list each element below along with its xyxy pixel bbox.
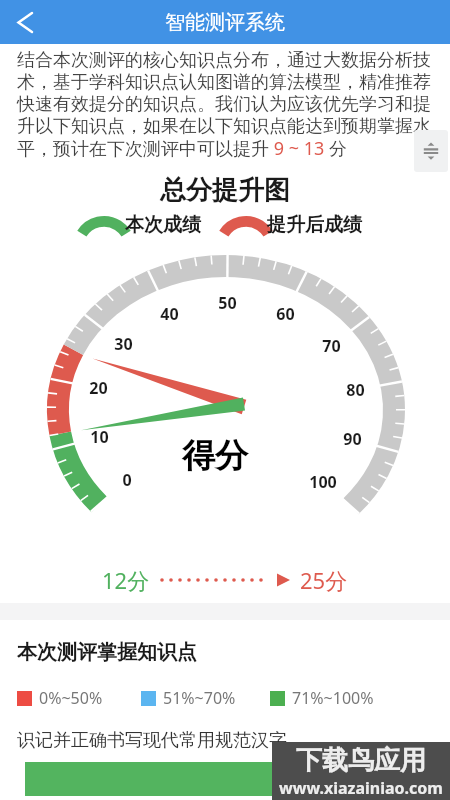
- staticText: 本次成绩: [125, 213, 201, 237]
- staticText: 得分: [182, 435, 248, 477]
- staticText: 51%~70%: [163, 687, 236, 709]
- staticText: 71%~100%: [292, 687, 374, 709]
- staticText: 12分: [102, 565, 150, 595]
- staticText: 结合本次测评的核心知识点分布，通过大数据分析技 术，基于学科知识点认知图谱的算法…: [17, 49, 445, 161]
- staticText: 40: [160, 303, 179, 325]
- staticText: 总分提升图: [160, 174, 290, 207]
- staticText: 0: [122, 469, 132, 491]
- button[interactable]: Menu: [414, 130, 448, 172]
- button[interactable]: 71%~100%: [270, 687, 374, 709]
- staticText: 25分: [300, 565, 348, 595]
- staticText: 0%~50%: [39, 687, 103, 709]
- staticText: 30: [114, 333, 133, 355]
- button[interactable]: Back: [2, 0, 46, 44]
- staticText: 50: [218, 292, 237, 314]
- staticText: 20: [89, 377, 108, 399]
- staticText: 100: [309, 471, 337, 493]
- staticText: 70: [322, 335, 341, 357]
- staticText: 80: [346, 379, 365, 401]
- button[interactable]: 51%~70%: [141, 687, 236, 709]
- button[interactable]: 本次成绩: [89, 213, 201, 237]
- staticText: 识记并正确书写现代常用规范汉字: [17, 729, 287, 752]
- button[interactable]: 提升后成绩: [231, 213, 362, 237]
- staticText: 本次测评掌握知识点: [17, 640, 197, 665]
- staticText: 提升后成绩: [267, 213, 362, 237]
- staticText: 60: [276, 303, 295, 325]
- staticText: 90: [343, 428, 362, 450]
- staticText: www.xiazainiao.com: [279, 777, 443, 799]
- staticText: 下载鸟应用: [296, 744, 426, 777]
- staticText: 智能测评系统: [165, 10, 285, 35]
- button[interactable]: 0%~50%: [17, 687, 103, 709]
- staticText: 10: [90, 426, 109, 448]
